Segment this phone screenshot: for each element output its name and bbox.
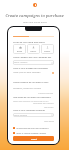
staticText: Which category will your campaign be? [13,56,54,59]
staticText: What do you need help with? [13,40,54,43]
staticText: View details [44,120,54,122]
staticText: Creator [44,50,51,52]
button[interactable]: I want to receive campaign updates [13,131,54,134]
button[interactable]: Agency [27,44,40,54]
other: App logo [33,3,37,7]
staticText: I want to receive campaign updates [16,132,47,134]
button[interactable]: I understand the terms and conditions [13,126,54,129]
staticText: Which platform do you want to use? [13,81,54,84]
button[interactable]: Select category [13,60,54,65]
button[interactable]: Brand [13,44,26,54]
button[interactable]: Under $500 for each campaign [13,71,54,74]
staticText: Change selection [38,92,54,95]
staticText: Select how regularly you would like to r… [13,100,54,102]
staticText: with your social proof [23,21,47,24]
staticText: Create campaigns to purchase [5,13,64,19]
button[interactable]: Next [13,136,54,141]
staticText: Select timeline [14,114,27,117]
staticText: campaigns with creators [33,102,54,104]
staticText: Brand [17,50,23,52]
staticText: Under $500 for each campaign [13,71,52,74]
staticText: Next [31,137,37,140]
staticText: How often do you want the campaign? [13,96,54,99]
staticText: Agency [30,50,37,52]
staticText: Instagram, TikTok and YouTube [13,87,54,90]
staticText: Select category [14,61,28,64]
staticText: I understand the terms and conditions [16,127,49,129]
staticText: What is your campaign timeline? [13,109,54,112]
staticText: What is your budget per campaign? [13,67,54,70]
button[interactable]: Creator [41,44,54,54]
staticText: See pricing [44,106,54,108]
button[interactable]: Select timeline [13,113,54,117]
